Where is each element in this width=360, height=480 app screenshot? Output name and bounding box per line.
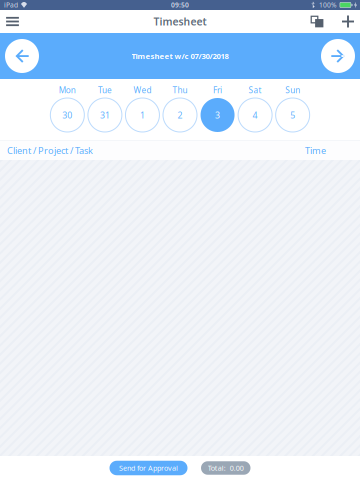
staticText: Tue <box>98 84 112 96</box>
staticText: 100% <box>319 0 337 10</box>
staticText: 09:50 <box>171 0 189 10</box>
button[interactable]: Add <box>336 10 360 33</box>
staticText: Sun <box>285 84 300 96</box>
button[interactable]: Send for Approval <box>109 461 187 475</box>
button[interactable]: Menu <box>0 10 25 33</box>
button[interactable]: Previous week <box>5 39 39 73</box>
staticText: Mon <box>59 84 76 96</box>
button[interactable]: Total: 0.00 <box>201 461 250 475</box>
staticText: 30 <box>62 109 72 121</box>
button[interactable]: Tue <box>86 85 124 132</box>
staticText: Client / Project / Task <box>7 144 93 157</box>
button[interactable]: Next week <box>321 39 355 73</box>
button[interactable]: Sat <box>236 85 274 132</box>
button[interactable]: Sun <box>274 85 311 132</box>
staticText: Sat <box>249 84 262 96</box>
staticText: Send for Approval <box>119 463 178 473</box>
button[interactable]: Mon <box>49 85 86 132</box>
button[interactable]: Thu <box>161 85 199 132</box>
staticText: 31 <box>100 109 110 121</box>
staticText: 5 <box>290 109 295 121</box>
staticText: Wed <box>133 84 151 96</box>
staticText: 2 <box>177 109 182 121</box>
staticText: Timesheet <box>153 14 206 29</box>
button[interactable]: Wed <box>124 85 161 132</box>
staticText: Fri <box>213 84 222 96</box>
staticText: Timesheet w/c 07/30/2018 <box>131 51 228 61</box>
staticText: iPad <box>4 0 18 10</box>
staticText: Total: 0.00 <box>208 463 244 473</box>
button[interactable]: Fri <box>199 85 236 132</box>
staticText: 3 <box>215 109 220 121</box>
staticText: 1 <box>140 109 145 121</box>
staticText: Time <box>305 144 326 157</box>
staticText: 4 <box>253 109 258 121</box>
button[interactable]: Duplicate <box>310 10 324 33</box>
staticText: Thu <box>172 84 187 96</box>
